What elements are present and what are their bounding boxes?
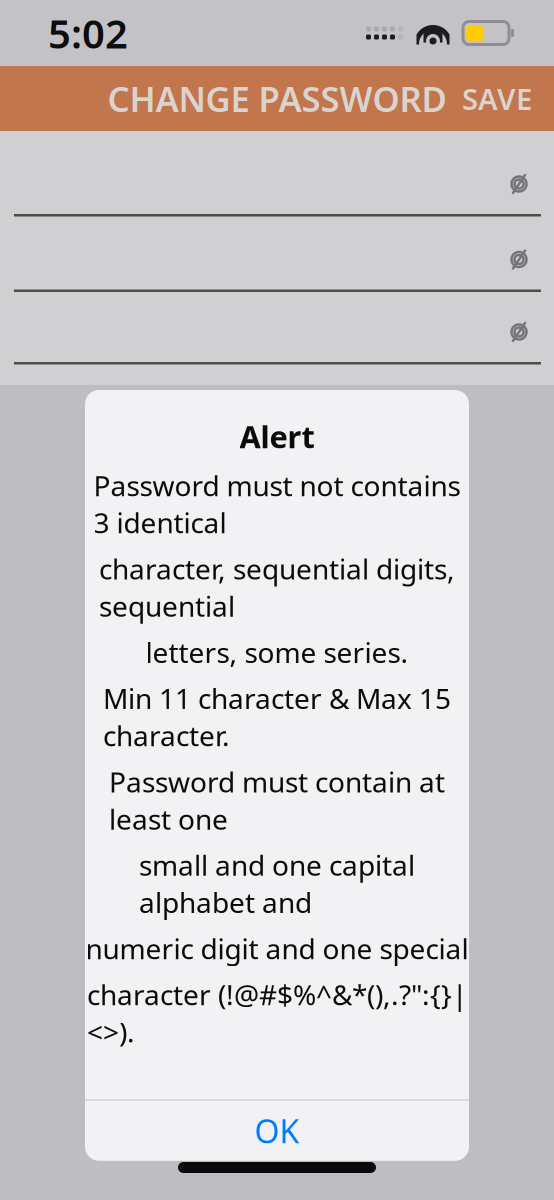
button[interactable]: Show password [497,315,541,349]
staticText: character (!@#$%^&*(),.?":{}|<>). [87,976,467,1050]
staticText: small and one capital alphabet and [139,846,415,921]
button[interactable]: SAVE [446,67,548,130]
button[interactable]: OK [85,1101,469,1161]
staticText: Min 11 character & Max 15 character. [103,680,451,754]
button[interactable]: Show password [497,242,541,276]
staticText: Password must not contains 3 identical [93,467,460,541]
staticText: 5:02 [48,6,128,59]
staticText: OK [254,1109,299,1152]
staticText: letters, some series. [145,633,408,671]
staticText: SAVE [462,79,532,118]
staticText: Password must contain at least one [109,763,445,837]
staticText: CHANGE PASSWORD [107,75,446,121]
staticText: numeric digit and one special [85,930,468,967]
staticText: Alert [239,416,314,457]
staticText: character, sequential digits, sequential [99,550,455,624]
button[interactable]: Show password [497,167,541,201]
